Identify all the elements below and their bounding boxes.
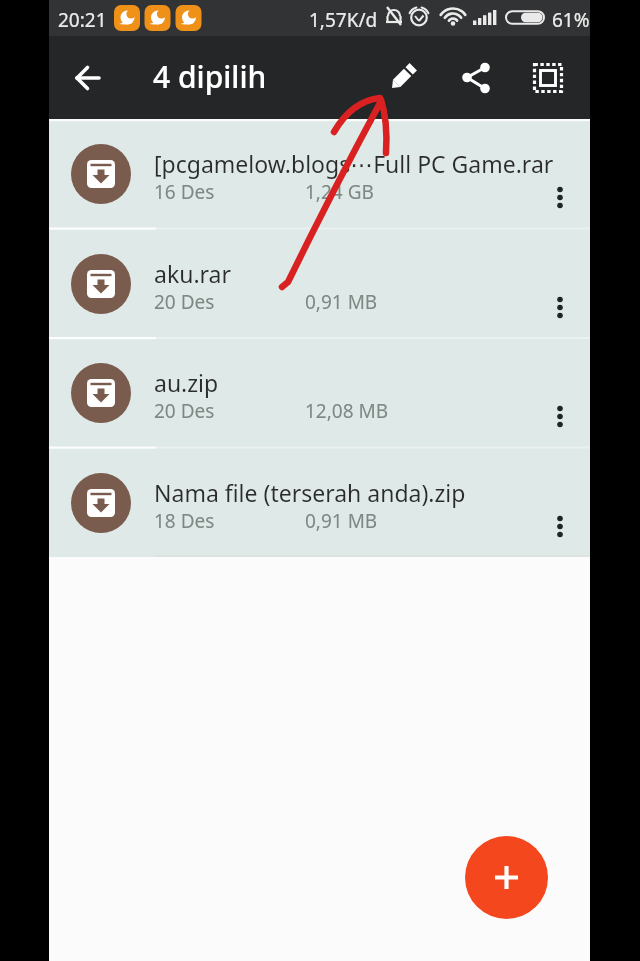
staticText: 20:21 (58, 7, 107, 33)
button[interactable] (452, 53, 500, 101)
staticText: 12,08 MB (305, 398, 389, 424)
button[interactable] (540, 396, 580, 436)
button[interactable]: Nama file (terserah anda).zip (49, 448, 590, 558)
staticText: 0,91 MB (305, 508, 378, 534)
button[interactable] (379, 53, 427, 101)
staticText: 4 dipilih (153, 56, 267, 97)
staticText: 18 Des (154, 508, 215, 534)
button[interactable]: [pcgamelow.blogs⋯Full PC Game.rar (49, 119, 590, 229)
staticText: 20 Des (154, 289, 215, 315)
button[interactable] (540, 177, 580, 217)
staticText: 1,24 GB (305, 179, 374, 205)
staticText: 20 Des (154, 398, 215, 424)
button[interactable] (524, 54, 572, 102)
button[interactable] (465, 836, 548, 919)
button[interactable]: au.zip (49, 338, 590, 448)
button[interactable] (64, 54, 112, 102)
staticText: au.zip (154, 367, 590, 398)
staticText: 0,91 MB (305, 289, 378, 315)
staticText: 1,57K/d (309, 7, 378, 33)
button[interactable] (540, 506, 580, 546)
staticText: Nama file (terserah anda).zip (154, 477, 590, 508)
button[interactable]: aku.rar (49, 229, 590, 339)
staticText: 61% (552, 7, 590, 33)
staticText: [pcgamelow.blogs⋯Full PC Game.rar (154, 148, 590, 179)
staticText: 16 Des (154, 179, 215, 205)
staticText: aku.rar (154, 258, 590, 289)
button[interactable] (540, 287, 580, 327)
